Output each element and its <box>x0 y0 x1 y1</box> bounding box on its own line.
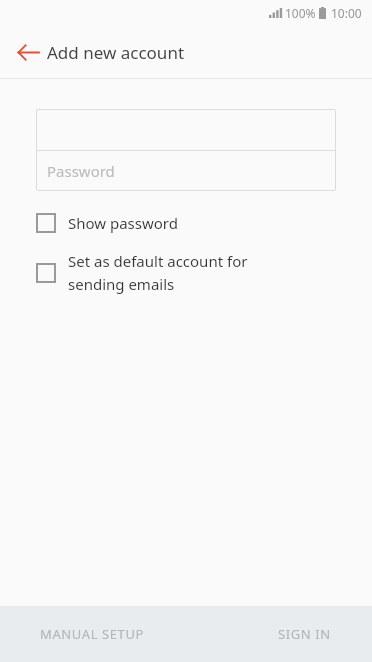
staticText: 100% <box>285 5 316 21</box>
staticText: Set as default account for sending email… <box>68 251 248 294</box>
staticText: MANUAL SETUP <box>40 625 145 643</box>
button[interactable]: Show password <box>0 213 372 233</box>
button[interactable] <box>36 109 336 150</box>
staticText: 10:00 <box>331 5 362 21</box>
staticText: Password <box>47 161 115 181</box>
button[interactable]: Set as default account for sending email… <box>0 251 372 294</box>
staticText: SIGN IN <box>278 625 331 643</box>
button[interactable]: Password <box>36 151 336 191</box>
button[interactable]: SIGN IN <box>186 606 372 662</box>
staticText: Add new account <box>47 41 185 64</box>
staticText: Show password <box>68 213 178 233</box>
button[interactable]: MANUAL SETUP <box>0 606 186 662</box>
button[interactable]: Back <box>6 30 50 74</box>
